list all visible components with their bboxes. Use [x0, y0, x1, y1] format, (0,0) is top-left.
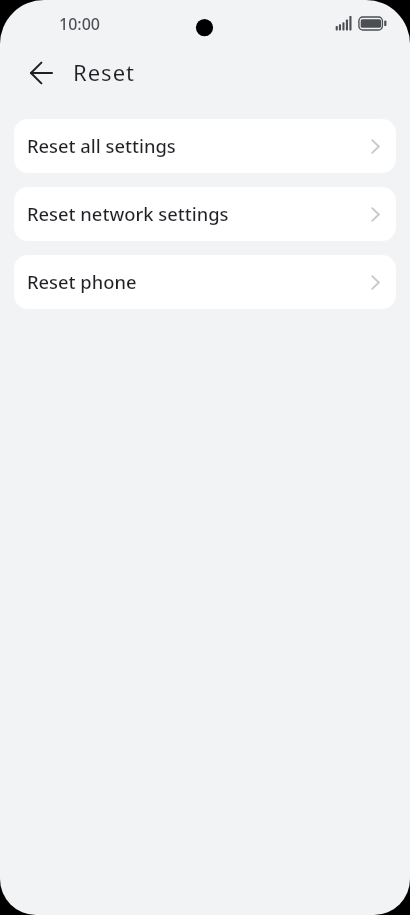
- staticText: Reset phone: [27, 269, 371, 294]
- button[interactable]: Reset all settings: [14, 119, 396, 173]
- button[interactable]: Reset phone: [14, 255, 396, 309]
- staticText: 10:00: [59, 13, 100, 35]
- button[interactable]: Back: [19, 51, 63, 95]
- staticText: Reset all settings: [27, 133, 371, 158]
- staticText: Reset network settings: [27, 201, 371, 226]
- button[interactable]: Reset network settings: [14, 187, 396, 241]
- staticText: Reset: [73, 57, 135, 87]
